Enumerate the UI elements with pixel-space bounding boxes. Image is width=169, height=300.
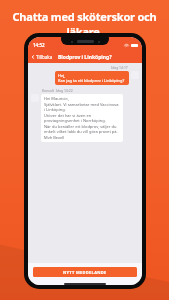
staticText: Idag 14:17 [111, 65, 128, 70]
staticText: Tillbaka [36, 54, 53, 60]
button[interactable]: Back [28, 52, 57, 62]
staticText: NYTT MEDDELANDE [63, 270, 107, 275]
staticText: Hej, [58, 73, 66, 78]
staticText: Hei Mauricio, [44, 96, 69, 101]
staticText: Kan jag ta ett blodprov i Linköping? [58, 78, 125, 83]
staticText: Mvh Bexell [44, 135, 65, 140]
staticText: När du beställer ett blodprov, väljer du… [44, 124, 120, 134]
staticText: Utöver det har vi även en provtagningsen… [44, 113, 120, 123]
button[interactable]: NYTT MEDDELANDE [33, 267, 137, 277]
staticText: Självklart. Vi samarbetar med Vaccinova … [44, 102, 120, 112]
staticText: Chatta med sköterskor och läkare. [5, 9, 164, 39]
staticText: Konsult Idag 14:22 [42, 88, 73, 93]
button[interactable]: Hej, [55, 71, 129, 85]
staticText: Blodprov i Linköping? [58, 54, 112, 61]
staticText: 14:52 [33, 42, 45, 48]
other: Back [31, 55, 35, 59]
button[interactable]: Hei Mauricio, [41, 94, 123, 142]
